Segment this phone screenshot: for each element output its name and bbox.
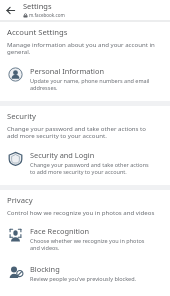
staticText: Settings [23,1,52,11]
staticText: Personal Information [30,66,105,76]
button[interactable]: Security and Login [0,140,170,178]
staticText: Account Settings [7,27,68,37]
staticText: Control how we recognize you in photos a… [7,208,155,216]
button[interactable]: Blocking [0,254,170,285]
staticText: Choose whether we recognize you in photo… [30,237,154,251]
staticText: Change your password and take other acti… [7,124,155,140]
staticText: Privacy [7,195,33,205]
staticText: Blocking [30,264,60,274]
staticText: Review people you've previously blocked. [30,275,137,282]
staticText: m.facebook.com [29,12,65,18]
staticText: Manage information about you and your ac… [7,40,155,56]
button[interactable]: Back [0,0,20,20]
staticText: Update your name, phone numbers and emai… [30,77,154,91]
staticText: Security and Login [30,150,95,160]
staticText: Face Recognition [30,226,90,236]
button[interactable]: Personal Information [0,56,170,94]
staticText: Change your password and take other acti… [30,161,154,175]
button[interactable]: Face Recognition [0,216,170,254]
staticText: Security [7,111,36,121]
